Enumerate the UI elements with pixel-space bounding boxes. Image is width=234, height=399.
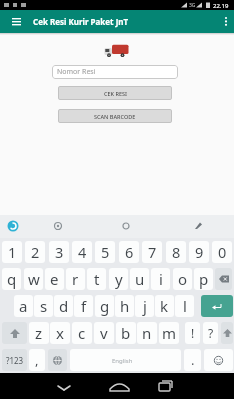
staticText: . xyxy=(191,351,195,369)
staticText: CEK RESI xyxy=(104,90,127,97)
staticText: English xyxy=(112,357,133,365)
staticText: c xyxy=(78,323,86,343)
staticText: n xyxy=(142,323,152,343)
staticText: ? xyxy=(208,325,214,341)
staticText: ! xyxy=(191,325,195,341)
staticText: , xyxy=(35,351,39,369)
staticText: 3 xyxy=(55,242,64,262)
staticText: 4 xyxy=(78,242,87,262)
staticText: a xyxy=(19,296,28,316)
staticText: t xyxy=(94,269,100,289)
staticText: 6 xyxy=(125,242,134,262)
staticText: b xyxy=(121,323,131,343)
staticText: i xyxy=(159,269,163,289)
staticText: q xyxy=(7,269,17,289)
staticText: Cek Resi Kurir Paket JnT xyxy=(33,16,129,27)
staticText: p xyxy=(199,269,209,289)
staticText: d xyxy=(59,296,69,316)
staticText: 2 xyxy=(31,242,40,262)
staticText: k xyxy=(160,296,169,316)
staticText: Nomor Resi xyxy=(57,67,96,77)
staticText: m xyxy=(162,323,177,343)
staticText: g xyxy=(100,296,110,316)
staticText: 5 xyxy=(101,242,110,262)
staticText: 9 xyxy=(195,242,204,262)
staticText: 0 xyxy=(218,242,227,262)
staticText: v xyxy=(100,323,108,343)
staticText: r xyxy=(72,269,79,289)
staticText: x xyxy=(56,323,64,343)
staticText: f xyxy=(81,296,87,316)
staticText: 22.19 xyxy=(213,2,229,10)
staticText: ?123 xyxy=(6,355,24,366)
staticText: j xyxy=(143,296,147,316)
staticText: SCAN BARCODE xyxy=(94,113,136,120)
staticText: z xyxy=(35,323,43,343)
staticText: w xyxy=(28,269,40,289)
staticText: e xyxy=(50,269,59,289)
staticText: 3G xyxy=(189,2,196,9)
staticText: 1 xyxy=(8,242,17,262)
staticText: 7 xyxy=(148,242,157,262)
staticText: o xyxy=(178,269,188,289)
staticText: y xyxy=(115,269,123,289)
staticText: u xyxy=(135,269,145,289)
staticText: 8 xyxy=(172,242,181,262)
staticText: h xyxy=(120,296,130,316)
staticText: s xyxy=(40,296,48,316)
staticText: l xyxy=(183,296,187,316)
